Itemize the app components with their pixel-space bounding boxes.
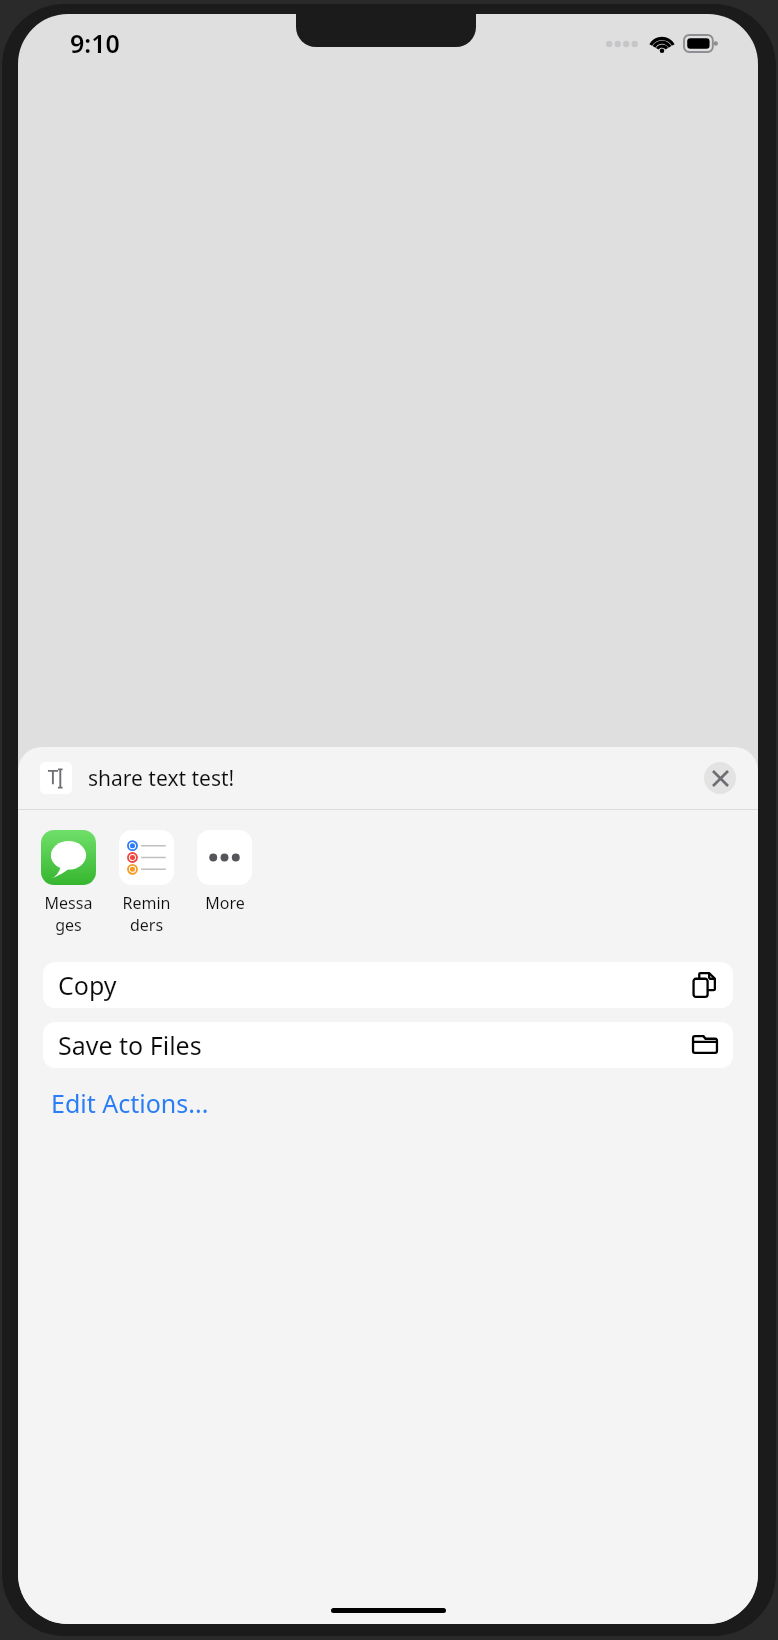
staticText: Save to Files: [58, 1028, 202, 1062]
button[interactable]: More: [196, 830, 253, 914]
staticText: Reminders: [118, 892, 175, 936]
staticText: share text test!: [88, 764, 235, 793]
button[interactable]: Edit Actions...: [51, 1086, 209, 1120]
staticText: More: [205, 892, 245, 914]
staticText: Messages: [40, 892, 97, 936]
staticText: 9:10: [70, 26, 120, 60]
button[interactable]: Messages: [40, 830, 97, 936]
button[interactable]: Close: [704, 762, 736, 794]
button[interactable]: Copy: [43, 962, 733, 1008]
button[interactable]: Reminders: [118, 830, 175, 936]
staticText: Copy: [58, 968, 117, 1002]
button[interactable]: Save to Files: [43, 1022, 733, 1068]
